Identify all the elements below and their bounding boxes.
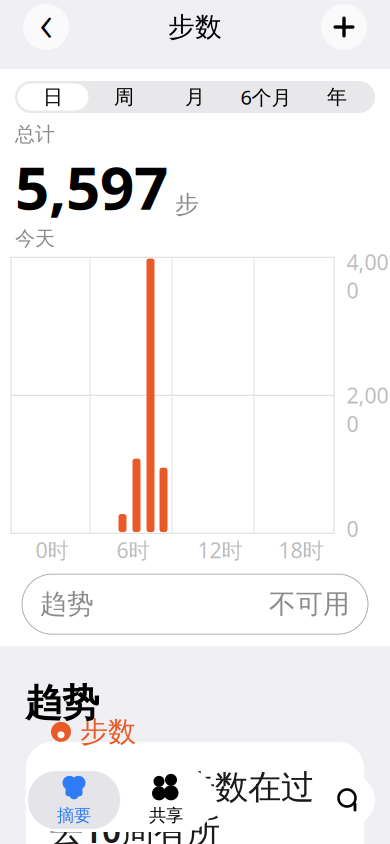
- staticText: 18时: [278, 536, 323, 564]
- button[interactable]: 步数: [0, 742, 390, 844]
- staticText: 总计: [15, 122, 55, 147]
- staticText: 摘要: [57, 805, 91, 826]
- button[interactable]: Search: [323, 774, 375, 826]
- staticText: 月: [185, 85, 205, 109]
- staticText: 步数: [80, 715, 136, 749]
- staticText: 趋势: [25, 680, 99, 726]
- button[interactable]: 摘要: [28, 771, 120, 829]
- staticText: 今天: [15, 226, 55, 251]
- staticText: ‹: [39, 0, 52, 56]
- button[interactable]: Add Data: [321, 4, 367, 50]
- staticText: 0: [346, 514, 358, 543]
- staticText: 日: [43, 85, 63, 109]
- staticText: 5,597: [15, 147, 168, 226]
- staticText: 共享: [149, 805, 183, 826]
- button[interactable]: 年: [301, 83, 372, 110]
- staticText: 6个月: [240, 84, 291, 110]
- staticText: 趋势: [40, 588, 94, 621]
- staticText: 周: [114, 85, 134, 109]
- staticText: 你的平均步数在过去10周有所: [50, 767, 314, 844]
- button[interactable]: 月: [159, 83, 230, 110]
- button[interactable]: 趋势: [0, 574, 390, 634]
- staticText: 步: [175, 190, 199, 219]
- staticText: 不可用: [269, 588, 350, 621]
- button[interactable]: 周: [88, 83, 159, 110]
- staticText: 年: [327, 85, 347, 109]
- staticText: 步数: [168, 11, 222, 43]
- staticText: 6时: [116, 536, 149, 564]
- staticText: 12时: [197, 536, 242, 564]
- button[interactable]: 6个月: [230, 83, 301, 110]
- staticText: 0时: [35, 536, 68, 564]
- staticText: 4,000: [346, 248, 388, 304]
- staticText: 2,000: [346, 381, 388, 438]
- button[interactable]: 日: [17, 83, 88, 110]
- button[interactable]: Back: [23, 4, 69, 50]
- button[interactable]: 共享: [120, 771, 212, 829]
